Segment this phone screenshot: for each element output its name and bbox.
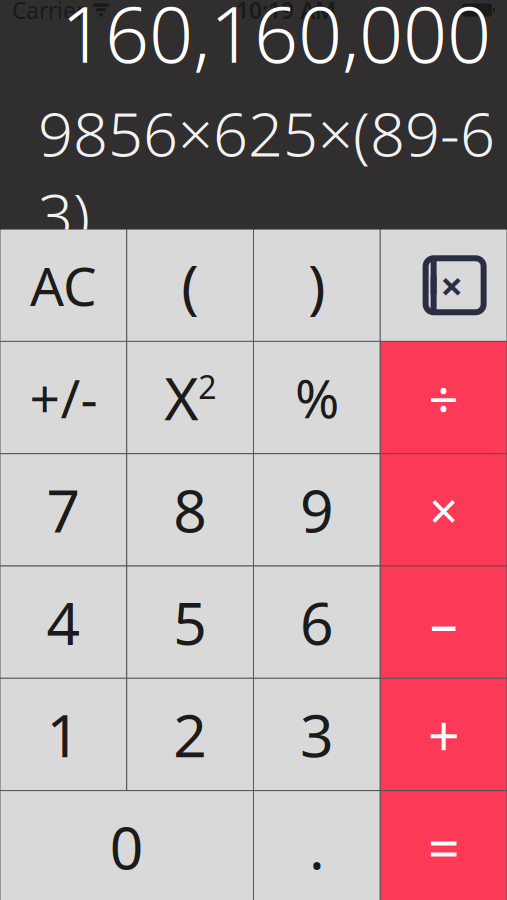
button[interactable]: × — [381, 454, 507, 565]
button[interactable]: 0 — [0, 791, 253, 900]
staticText: 8 — [173, 471, 207, 549]
button[interactable]: – — [381, 566, 507, 678]
staticText: AC — [30, 250, 97, 321]
staticText: 9 — [300, 471, 334, 549]
button[interactable]: ( — [127, 230, 253, 341]
staticText: 7 — [46, 471, 80, 549]
staticText: 10:19 AM — [236, 0, 336, 25]
button[interactable]: X squared — [127, 342, 253, 453]
button[interactable]: 6 — [254, 566, 380, 678]
staticText: 6 — [300, 583, 334, 661]
button[interactable]: 7 — [0, 454, 126, 565]
button[interactable]: + — [381, 679, 507, 790]
staticText: 2 — [173, 695, 207, 773]
staticText: + — [428, 697, 460, 772]
staticText: 0 — [110, 808, 144, 886]
staticText: ( — [181, 246, 199, 324]
button[interactable]: AC — [0, 230, 126, 341]
staticText: 9856×625×(89-63) — [38, 92, 495, 255]
staticText: 4 — [46, 583, 80, 661]
staticText: – — [430, 585, 458, 659]
staticText: X — [164, 359, 198, 436]
button[interactable]: = — [381, 791, 507, 900]
button[interactable]: ÷ — [381, 342, 507, 453]
staticText: ) — [308, 246, 326, 324]
staticText: = — [428, 810, 460, 884]
button[interactable]: 2 — [127, 679, 253, 790]
button[interactable]: 1 — [0, 679, 126, 790]
staticText: % — [295, 362, 339, 433]
button[interactable]: ) — [254, 230, 380, 341]
staticText: ÷ — [428, 362, 459, 433]
staticText: +/- — [29, 362, 97, 433]
button[interactable]: % — [254, 342, 380, 453]
staticText: 5 — [173, 583, 207, 661]
staticText: 3 — [300, 695, 334, 773]
staticText: × — [429, 476, 458, 543]
button[interactable]: 9 — [254, 454, 380, 565]
button[interactable]: 8 — [127, 454, 253, 565]
staticText: 160,160,000 — [61, 0, 491, 84]
staticText: . — [309, 808, 325, 886]
button[interactable]: +/- — [0, 342, 126, 453]
button[interactable]: . — [254, 791, 380, 900]
staticText: Carrier — [12, 0, 85, 25]
staticText: 2 — [198, 365, 216, 408]
button[interactable]: 4 — [0, 566, 126, 678]
staticText: 1 — [46, 695, 80, 773]
button[interactable]: 5 — [127, 566, 253, 678]
staticText: × — [440, 259, 463, 312]
button[interactable]: Backspace — [381, 230, 507, 341]
button[interactable]: 3 — [254, 679, 380, 790]
